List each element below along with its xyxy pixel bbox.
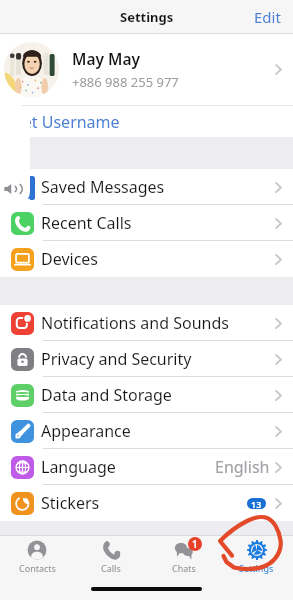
- button[interactable]: Calls: [74, 540, 147, 574]
- staticText: Data and Storage: [41, 384, 172, 406]
- button[interactable]: Set Username: [0, 106, 293, 137]
- staticText: Saved Messages: [41, 176, 165, 198]
- button[interactable]: Edit: [240, 1, 293, 33]
- button[interactable]: 1: [147, 540, 220, 574]
- staticText: +886 988 255 977: [72, 73, 179, 91]
- staticText: Contacts: [19, 562, 56, 574]
- staticText: Calls: [101, 562, 121, 574]
- button[interactable]: Language: [0, 449, 293, 485]
- staticText: Privacy and Security: [41, 348, 192, 370]
- staticText: 1: [192, 537, 198, 551]
- staticText: 13: [251, 498, 262, 509]
- staticText: Set Username: [14, 111, 120, 133]
- staticText: May May: [72, 48, 140, 69]
- button[interactable]: Devices: [0, 241, 293, 277]
- button[interactable]: Recent Calls: [0, 205, 293, 241]
- staticText: Notifications and Sounds: [41, 312, 229, 334]
- button[interactable]: Stickers: [0, 485, 293, 521]
- staticText: English: [215, 456, 270, 478]
- button[interactable]: Privacy and Security: [0, 341, 293, 377]
- staticText: Settings: [239, 562, 274, 574]
- staticText: Appearance: [41, 420, 131, 442]
- button[interactable]: Contacts: [0, 540, 74, 574]
- staticText: Stickers: [41, 492, 100, 514]
- staticText: Language: [41, 456, 116, 478]
- button[interactable]: Settings: [220, 540, 293, 574]
- button[interactable]: Saved Messages: [0, 169, 293, 205]
- staticText: Devices: [41, 248, 99, 270]
- button[interactable]: Data and Storage: [0, 377, 293, 413]
- staticText: Settings: [120, 8, 174, 26]
- staticText: Recent Calls: [41, 212, 132, 234]
- button[interactable]: May May: [0, 34, 293, 105]
- button[interactable]: Appearance: [0, 413, 293, 449]
- staticText: Edit: [254, 7, 281, 27]
- button[interactable]: Notifications and Sounds: [0, 305, 293, 341]
- staticText: Chats: [172, 562, 196, 574]
